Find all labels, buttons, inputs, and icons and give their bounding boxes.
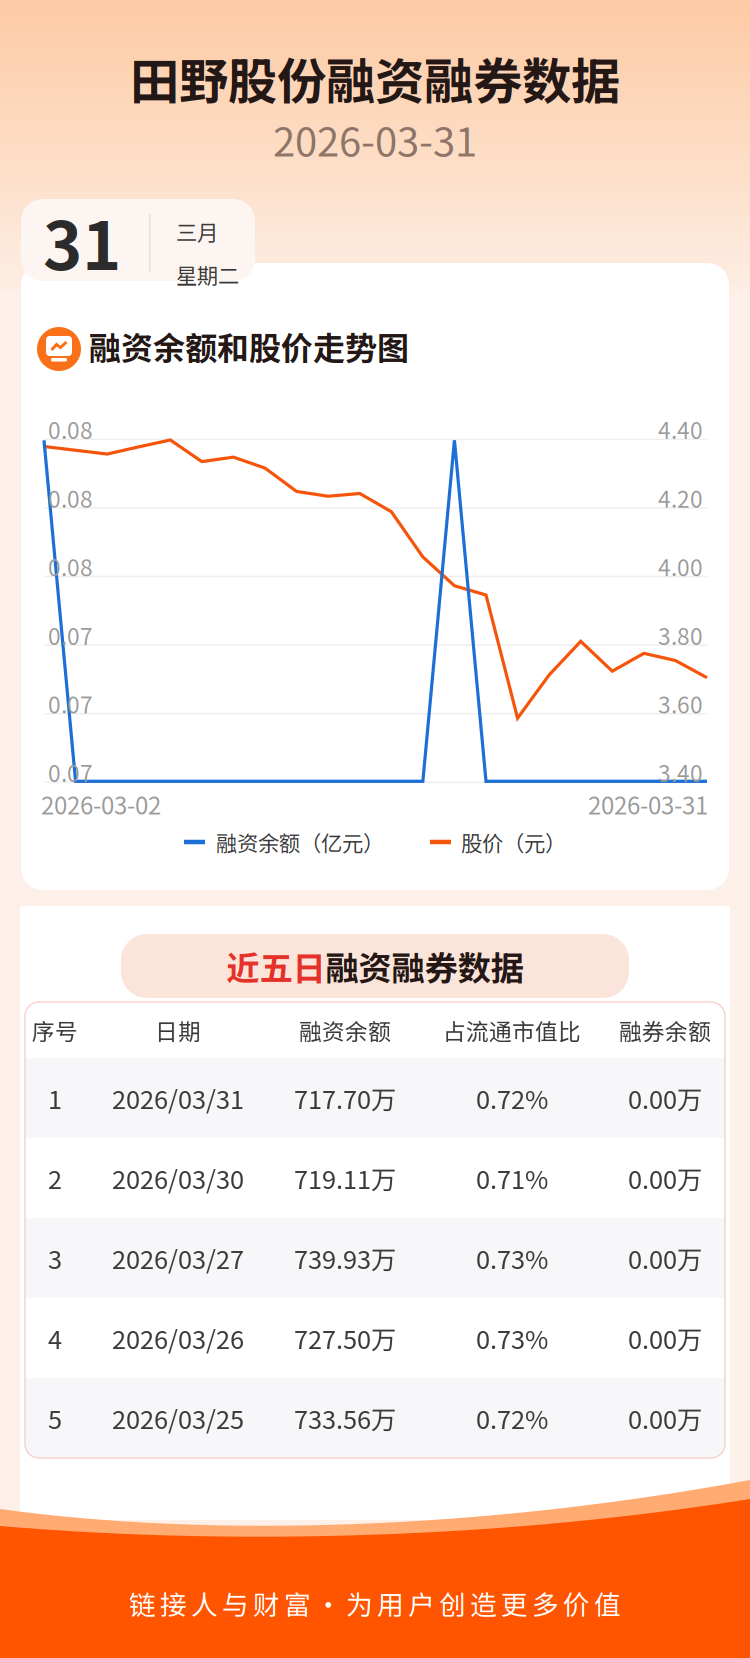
staticText: 4 bbox=[48, 1320, 62, 1356]
staticText: 4.00 bbox=[658, 550, 703, 583]
staticText: 4.40 bbox=[658, 413, 703, 446]
staticText: 链接人与财富·为用户创造更多价值 bbox=[129, 1584, 621, 1622]
staticText: 2 bbox=[48, 1160, 62, 1196]
staticText: 0.73% bbox=[476, 1320, 548, 1356]
staticText: 融资余额 bbox=[299, 1014, 391, 1046]
staticText: 1 bbox=[48, 1080, 62, 1116]
staticText: 0.07 bbox=[48, 687, 93, 720]
staticText: 0.07 bbox=[48, 756, 93, 789]
staticText: 3.60 bbox=[658, 687, 703, 720]
staticText: 2026/03/31 bbox=[112, 1080, 244, 1116]
staticText: 0.08 bbox=[48, 413, 93, 446]
staticText: 2026-03-31 bbox=[273, 110, 477, 168]
staticText: 0.72% bbox=[476, 1080, 548, 1116]
staticText: 727.50万 bbox=[294, 1320, 396, 1356]
staticText: 股价（元） bbox=[461, 827, 566, 857]
staticText: 融资余额和股价走势图 bbox=[89, 323, 409, 369]
staticText: 融资余额（亿元） bbox=[216, 827, 384, 857]
staticText: 占流通市值比 bbox=[443, 1014, 581, 1046]
staticText: 3.80 bbox=[658, 619, 703, 651]
staticText: 2026-03-02 bbox=[41, 787, 161, 821]
staticText: 5 bbox=[48, 1400, 62, 1436]
staticText: 2026/03/30 bbox=[112, 1160, 244, 1196]
staticText: 3 bbox=[48, 1240, 62, 1276]
staticText: 0.08 bbox=[48, 481, 93, 514]
staticText: 融资融券数据 bbox=[325, 942, 523, 990]
staticText: 0.71% bbox=[476, 1160, 548, 1196]
staticText: 0.00万 bbox=[628, 1320, 702, 1356]
staticText: 融券余额 bbox=[619, 1014, 711, 1046]
staticText: 0.08 bbox=[48, 550, 93, 583]
staticText: 2026/03/27 bbox=[112, 1240, 244, 1276]
staticText: 三月 bbox=[176, 216, 218, 247]
staticText: 星期二 bbox=[176, 259, 239, 290]
staticText: 近五日 bbox=[226, 942, 325, 990]
staticText: 2026-03-31 bbox=[588, 787, 708, 821]
staticText: 3.40 bbox=[658, 756, 703, 789]
staticText: 日期 bbox=[155, 1014, 201, 1046]
staticText: 2026/03/26 bbox=[112, 1320, 244, 1356]
staticText: 0.00万 bbox=[628, 1080, 702, 1116]
staticText: 0.07 bbox=[48, 619, 93, 651]
staticText: 0.73% bbox=[476, 1240, 548, 1276]
staticText: 序号 bbox=[32, 1014, 78, 1046]
staticText: 733.56万 bbox=[294, 1400, 396, 1436]
staticText: 717.70万 bbox=[294, 1080, 396, 1116]
staticText: 0.72% bbox=[476, 1400, 548, 1436]
staticText: 田野股份融资融券数据 bbox=[130, 42, 620, 114]
staticText: 739.93万 bbox=[294, 1240, 396, 1276]
staticText: 719.11万 bbox=[294, 1160, 396, 1196]
staticText: 0.00万 bbox=[628, 1400, 702, 1436]
staticText: 0.00万 bbox=[628, 1160, 702, 1196]
staticText: 31 bbox=[43, 193, 121, 289]
staticText: 0.00万 bbox=[628, 1240, 702, 1276]
staticText: 2026/03/25 bbox=[112, 1400, 244, 1436]
staticText: 4.20 bbox=[658, 481, 703, 514]
